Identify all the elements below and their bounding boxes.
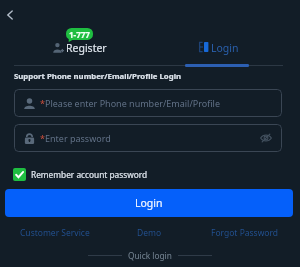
staticText: Register	[66, 41, 107, 55]
button[interactable]: Customer Service	[8, 226, 102, 240]
staticText: *	[40, 97, 45, 109]
button[interactable]: Demo	[102, 226, 197, 240]
staticText: Enter password	[45, 132, 111, 144]
staticText: *	[40, 132, 45, 144]
staticText: 1-777	[69, 29, 90, 40]
button[interactable]: Login	[195, 40, 245, 56]
button[interactable]: *	[14, 124, 282, 152]
staticText: Login	[135, 196, 163, 210]
staticText: Demo	[137, 227, 162, 239]
staticText: Customer Service	[20, 227, 90, 239]
staticText: Please enter Phone number/Email/Profile	[45, 97, 220, 109]
button[interactable]: Show password	[259, 131, 273, 145]
staticText: Remember account password	[31, 169, 148, 180]
staticText: Forgot Password	[211, 227, 279, 239]
staticText: Login	[211, 41, 239, 55]
button[interactable]: Login	[5, 189, 293, 217]
button[interactable]: Register	[48, 40, 114, 56]
button[interactable]: Remember account password	[13, 167, 148, 181]
button[interactable]: Forgot Password	[197, 226, 292, 240]
staticText: Quick login	[128, 250, 172, 261]
button[interactable]: *	[14, 89, 282, 117]
staticText: Support Phone number/Email/Profile Login	[14, 71, 182, 82]
button[interactable]: Back	[2, 7, 18, 23]
